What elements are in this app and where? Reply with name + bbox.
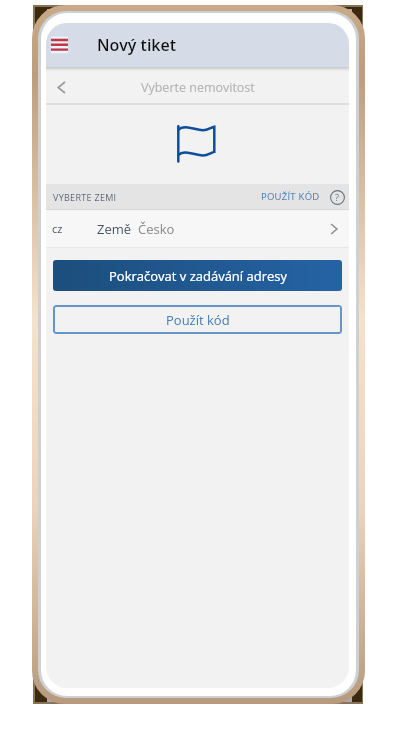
button[interactable]: Back xyxy=(46,71,76,103)
button[interactable]: Pokračovat v zadávání adresy xyxy=(53,260,342,291)
staticText: Vyberte nemovitost xyxy=(141,79,255,96)
staticText: POUŽÍT KÓD xyxy=(261,190,320,203)
staticText: Nový tiket xyxy=(97,34,177,56)
staticText: ? xyxy=(335,191,339,203)
staticText: Použít kód xyxy=(166,311,230,329)
button[interactable]: cz xyxy=(46,210,349,247)
button[interactable]: Help xyxy=(327,187,347,207)
button[interactable]: Použít kód xyxy=(53,305,342,334)
button[interactable]: Menu xyxy=(46,31,73,59)
staticText: VYBERTE ZEMI xyxy=(53,191,117,203)
button[interactable]: POUŽÍT KÓD xyxy=(258,185,323,208)
staticText: Země xyxy=(97,220,132,238)
staticText: Česko xyxy=(138,220,175,238)
staticText: cz xyxy=(52,221,63,236)
staticText: Pokračovat v zadávání adresy xyxy=(109,267,287,285)
